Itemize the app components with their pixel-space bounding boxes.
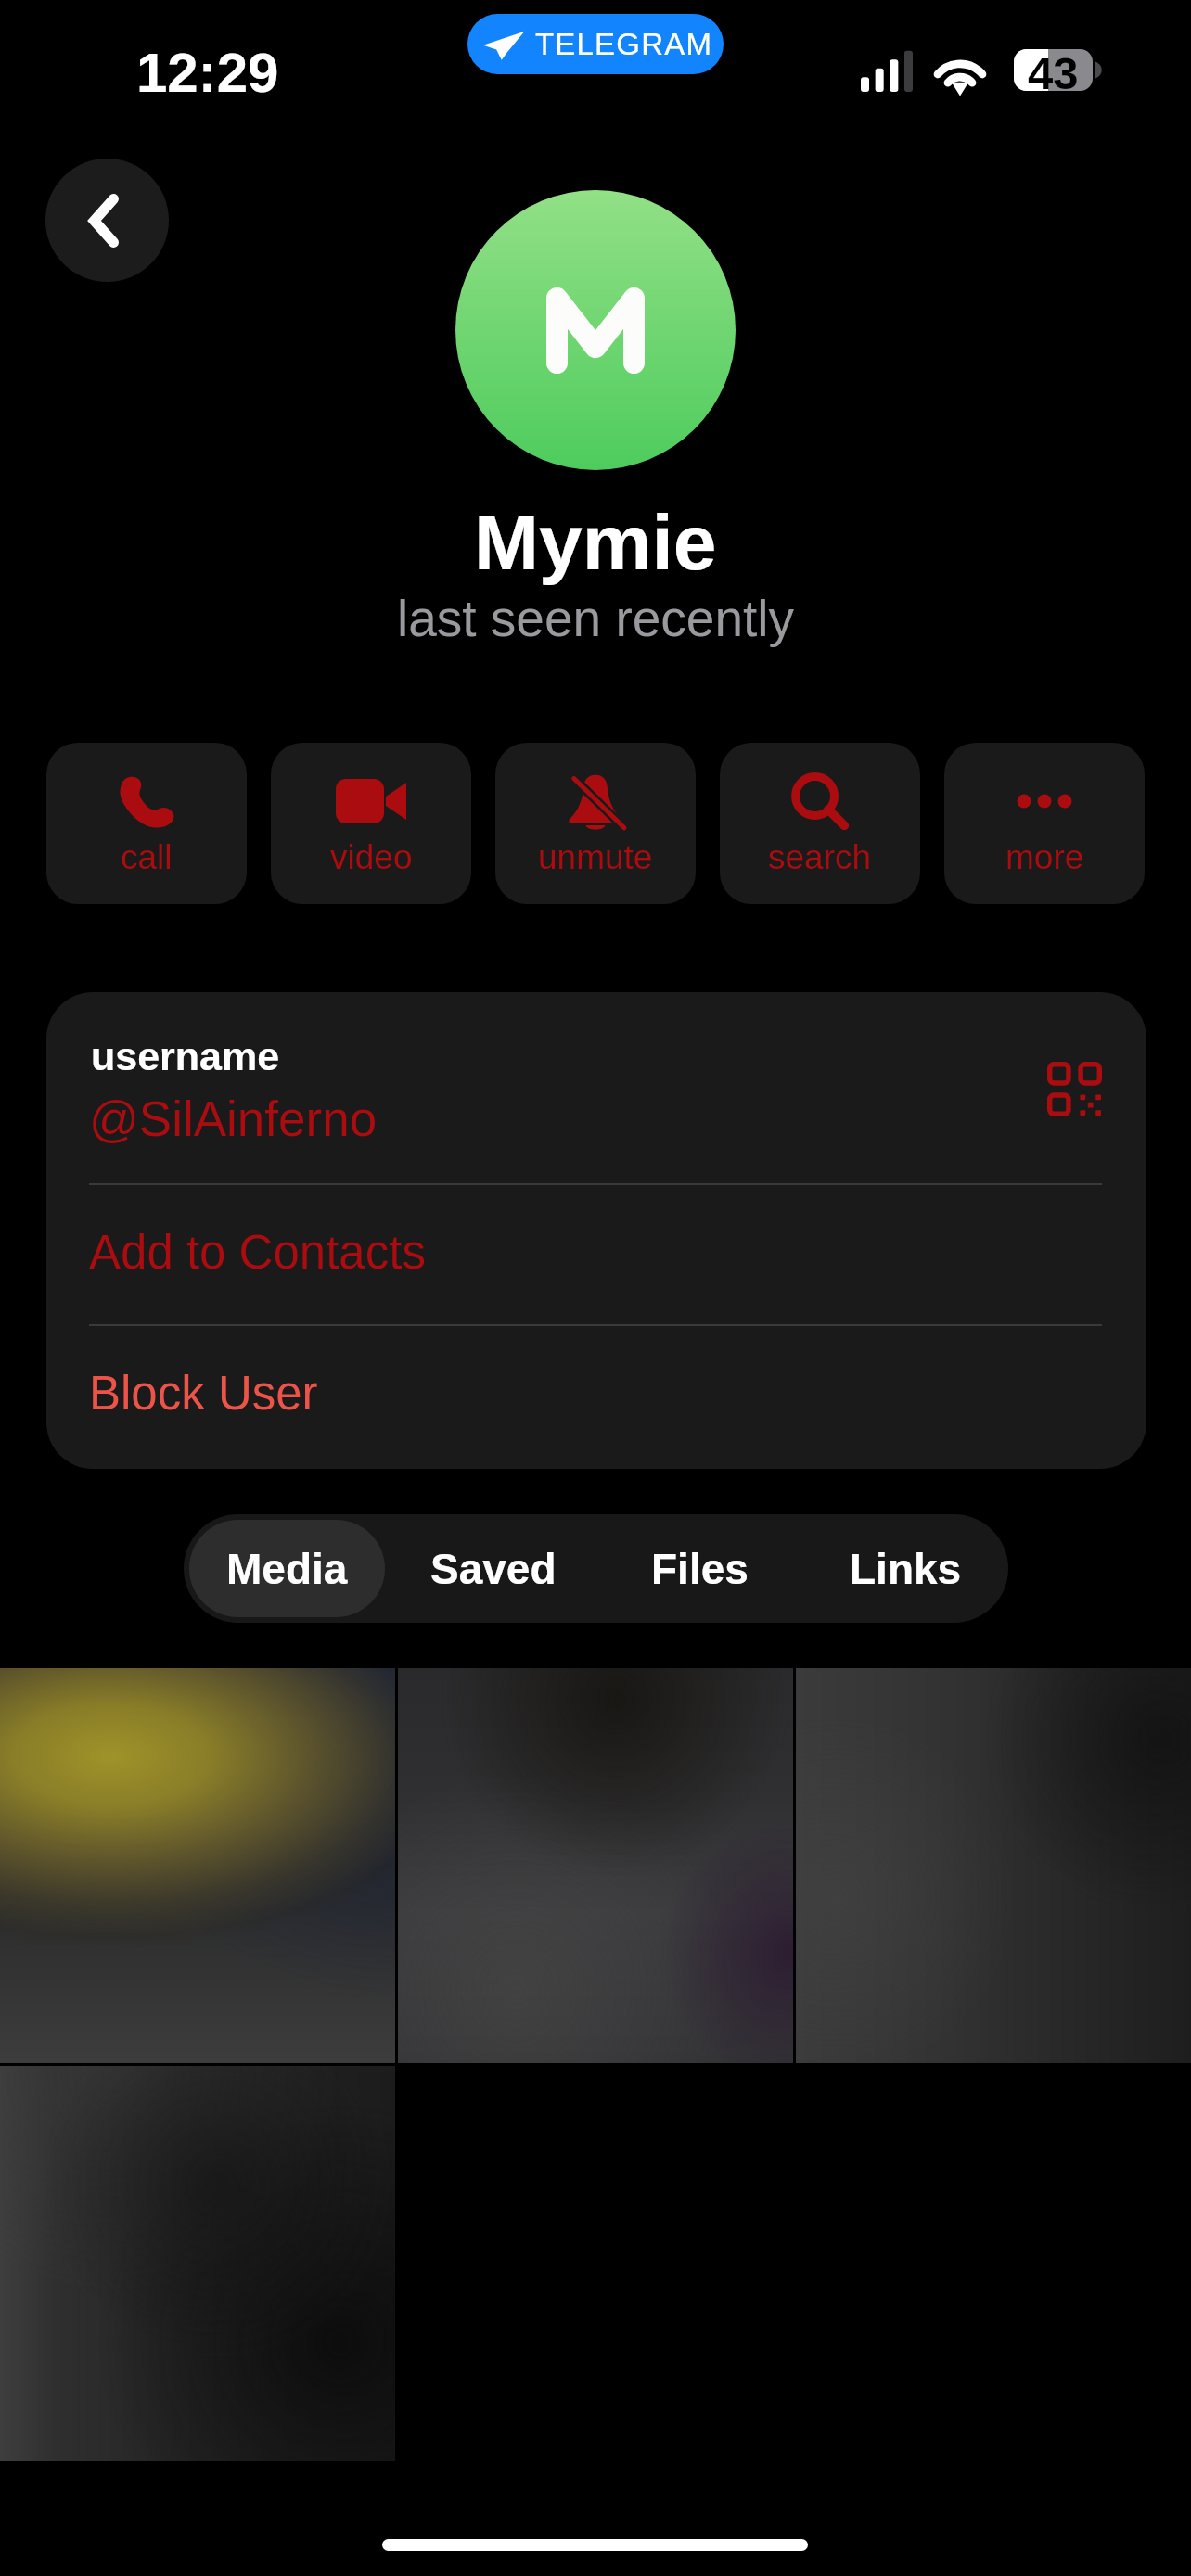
staticText: Mymie	[474, 499, 717, 586]
staticText: Media	[226, 1545, 348, 1592]
button[interactable]	[0, 1668, 395, 2063]
button[interactable]: Media	[189, 1520, 385, 1617]
staticText: search	[768, 838, 872, 876]
button[interactable]: Files	[602, 1520, 797, 1617]
button[interactable]: Back	[45, 159, 169, 282]
button[interactable]	[796, 1668, 1191, 2063]
staticText: 43	[1028, 48, 1079, 90]
staticText: unmute	[538, 838, 653, 876]
staticText: 12:29	[136, 42, 279, 104]
staticText: TELEGRAM	[535, 27, 713, 61]
staticText: Add to Contacts	[89, 1226, 426, 1279]
staticText: @SilAinferno	[89, 1091, 378, 1146]
staticText: Block User	[89, 1367, 318, 1420]
button[interactable]: Links	[808, 1520, 1003, 1617]
button[interactable]: Block User	[46, 1325, 1146, 1469]
staticText: Files	[651, 1545, 749, 1592]
staticText: username	[91, 1034, 280, 1078]
staticText: Links	[850, 1545, 962, 1592]
button[interactable]	[398, 1668, 793, 2063]
staticText: more	[1005, 838, 1084, 876]
button[interactable]: Add to Contacts	[46, 1184, 1146, 1325]
button[interactable]: search	[720, 743, 920, 904]
staticText: call	[121, 838, 173, 876]
button[interactable]: QR code	[1028, 1042, 1121, 1135]
staticText: Saved	[430, 1545, 557, 1592]
button[interactable]	[0, 2066, 395, 2461]
button[interactable]: video	[271, 743, 471, 904]
button[interactable]: more	[944, 743, 1145, 904]
button[interactable]: unmute	[495, 743, 696, 904]
button[interactable]: call	[46, 743, 247, 904]
button[interactable]: Saved	[396, 1520, 591, 1617]
staticText: video	[330, 838, 413, 876]
button[interactable]: username	[46, 992, 1146, 1184]
staticText: last seen recently	[397, 590, 794, 646]
